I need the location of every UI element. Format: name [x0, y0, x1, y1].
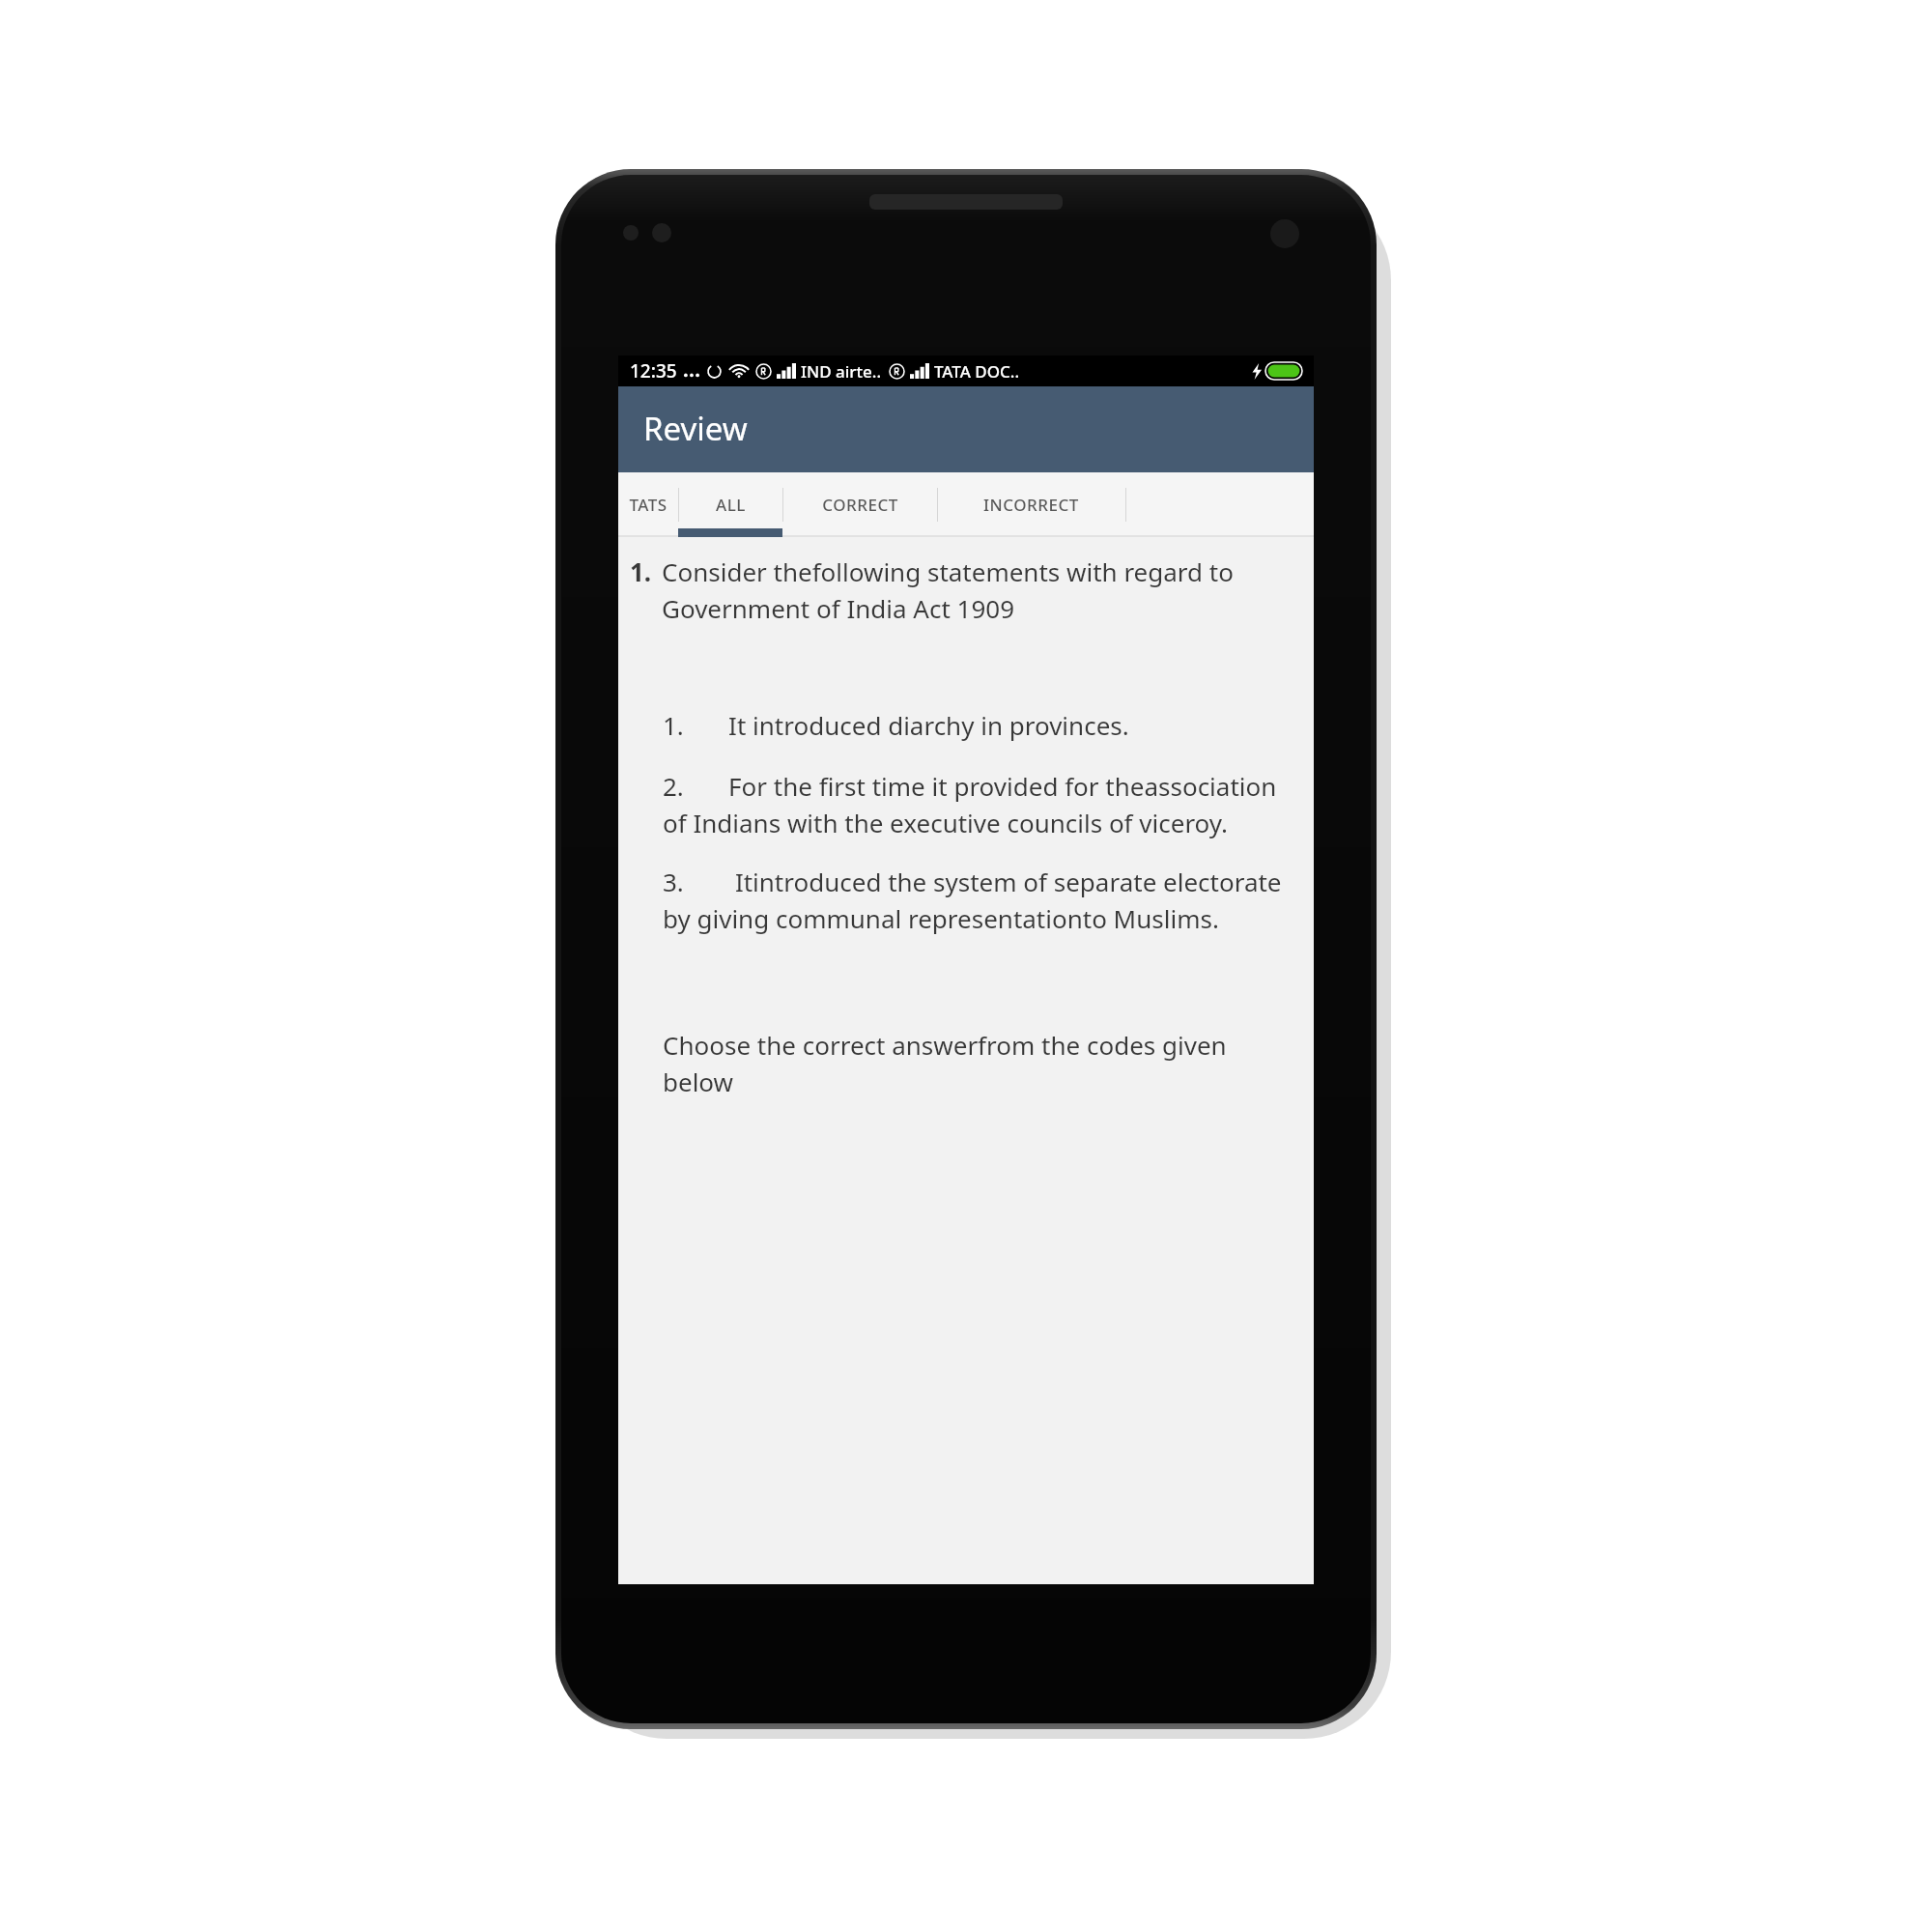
staticText: CORRECT [822, 494, 898, 516]
staticText: IND airte.. [801, 360, 882, 383]
button[interactable]: TATS [618, 472, 678, 537]
staticText: TATA DOC.. [934, 360, 1020, 383]
staticText: ALL [716, 494, 746, 516]
button[interactable]: CORRECT [782, 472, 937, 537]
button[interactable]: INCORRECT [937, 472, 1125, 537]
button[interactable]: ALL [678, 472, 782, 537]
staticText: INCORRECT [983, 494, 1079, 516]
staticText: 2. For the first time it provided for th… [663, 769, 1302, 839]
staticText: TATS [629, 494, 668, 516]
button[interactable]: Review [618, 386, 1314, 472]
staticText: Consider thefollowing statements with re… [662, 554, 1302, 625]
staticText: 12:35 [630, 358, 677, 384]
staticText: 1. [630, 554, 652, 588]
staticText: Choose the correct answerfrom the codes … [663, 1028, 1302, 1098]
staticText: 3. Itintroduced the system of separate e… [663, 865, 1302, 935]
staticText: 1. It introduced diarchy in provinces. [663, 708, 1129, 742]
staticText: Review [643, 407, 748, 450]
